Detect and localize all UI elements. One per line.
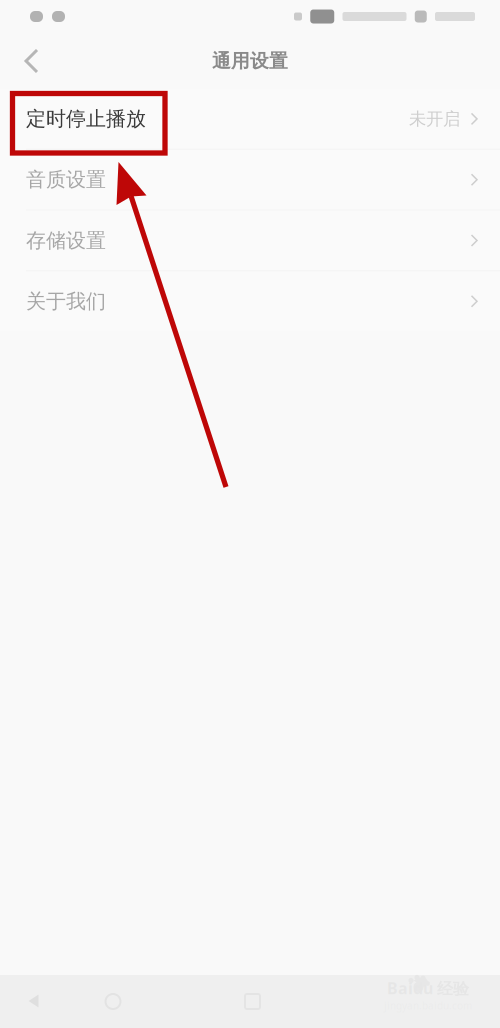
button[interactable]: 音质设置 xyxy=(0,150,500,210)
staticText: 通用设置 xyxy=(212,49,288,73)
staticText: 未开启 xyxy=(409,108,460,130)
staticText: 定时停止播放 xyxy=(26,106,146,131)
button[interactable]: 存储设置 xyxy=(0,211,500,270)
staticText: 关于我们 xyxy=(26,289,106,314)
staticText: Baidu 经验 xyxy=(387,977,469,999)
button[interactable]: 返回 xyxy=(0,33,63,89)
button[interactable]: 关于我们 xyxy=(0,271,500,331)
staticText: 音质设置 xyxy=(26,167,106,192)
button[interactable]: 定时停止播放 xyxy=(0,89,500,149)
staticText: 存储设置 xyxy=(26,228,106,253)
